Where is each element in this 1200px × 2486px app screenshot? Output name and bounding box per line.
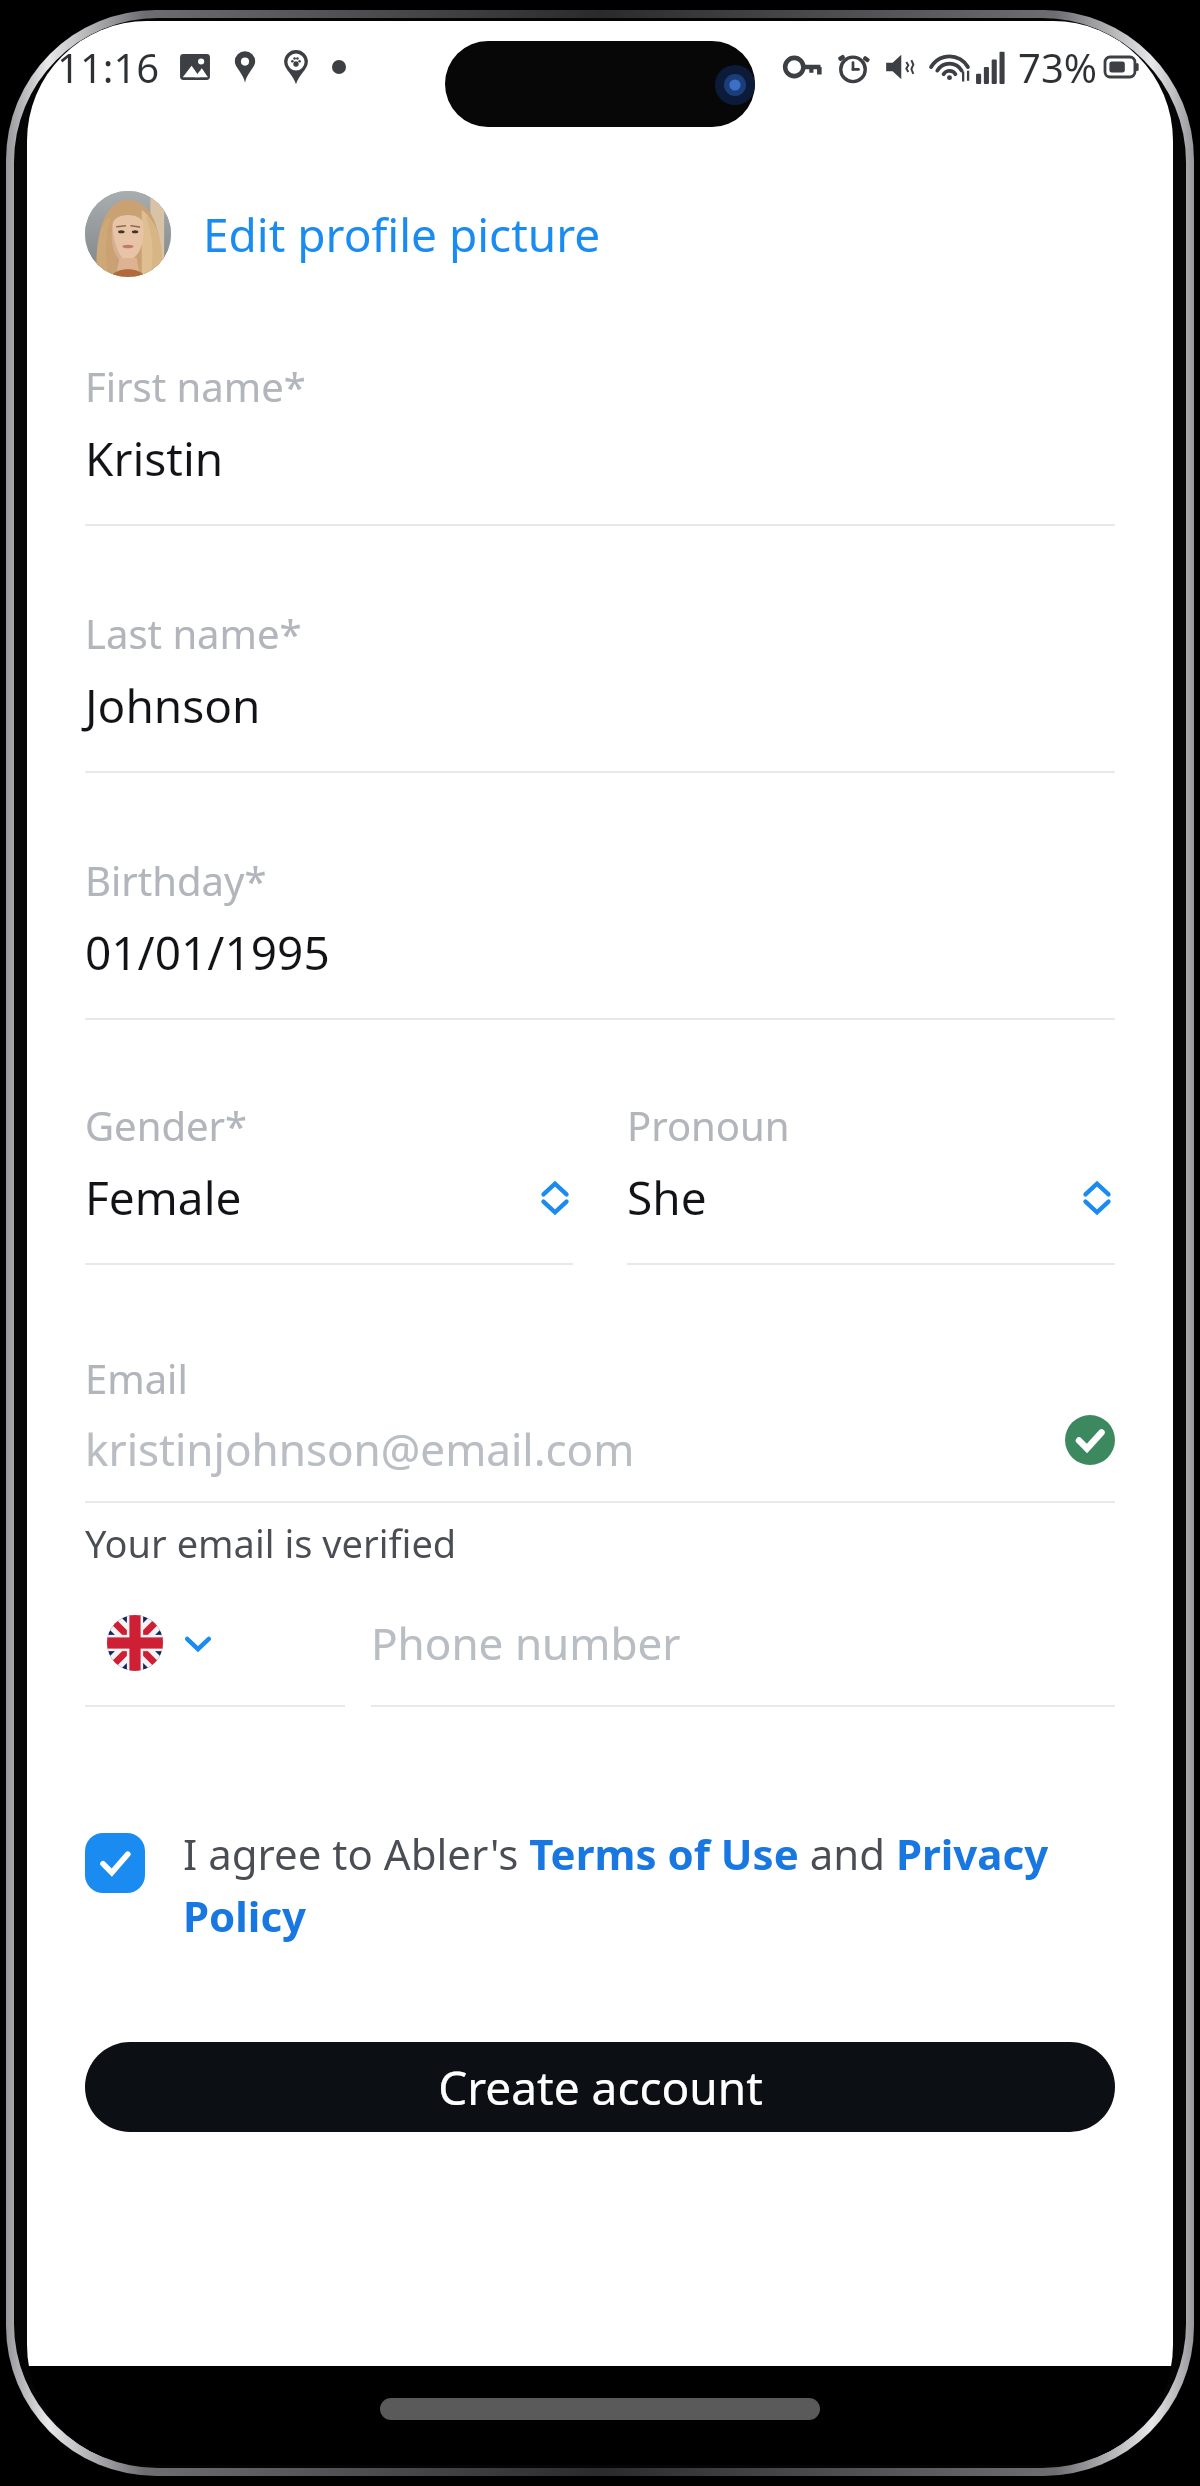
staticText: I agree to Abler's Terms of Use and Priv… <box>183 1825 1115 1944</box>
staticText: 01/01/1995 <box>85 921 330 984</box>
staticText: Kristin <box>85 427 224 490</box>
button[interactable]: Last name* <box>85 606 1115 773</box>
staticText: Phone number <box>371 1613 681 1673</box>
staticText: Edit profile picture <box>203 203 601 266</box>
button[interactable]: Edit profile picture <box>85 185 1115 283</box>
staticText: Create account <box>438 2056 763 2119</box>
staticText: Your email is verified <box>85 1517 457 1569</box>
button[interactable]: Gender* <box>85 1098 573 1265</box>
staticText: Birthday* <box>85 853 267 907</box>
staticText: Last name* <box>85 606 302 660</box>
staticText: 11:16 <box>57 40 160 94</box>
staticText: Email <box>85 1351 188 1405</box>
button[interactable]: Phone number <box>371 1603 1115 1683</box>
staticText: Johnson <box>85 674 261 737</box>
staticText: kristinjohnson@email.com <box>85 1419 635 1479</box>
staticText: Pronoun <box>627 1098 790 1152</box>
staticText: 73% <box>1018 40 1097 94</box>
button[interactable]: I agree to Abler's Terms of Use and Priv… <box>85 1825 1115 1944</box>
button[interactable]: Birthday* <box>85 853 1115 1020</box>
staticText: She <box>627 1166 707 1229</box>
other: Email verified <box>1065 1415 1115 1465</box>
staticText: Female <box>85 1166 242 1229</box>
button[interactable]: First name* <box>85 359 1115 526</box>
button[interactable]: Select country code <box>85 1603 345 1683</box>
button[interactable]: Email <box>85 1351 1115 1479</box>
staticText: Gender* <box>85 1098 248 1152</box>
button[interactable]: Create account <box>85 2042 1115 2132</box>
staticText: First name* <box>85 359 306 413</box>
button[interactable]: Pronoun <box>627 1098 1115 1265</box>
